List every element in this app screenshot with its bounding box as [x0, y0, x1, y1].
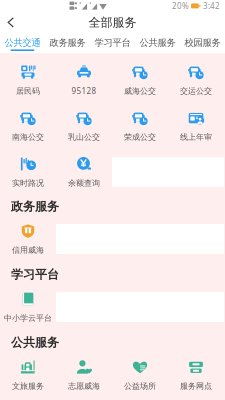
- button[interactable]: 政务服务: [45, 33, 90, 53]
- staticText: 志愿威海: [68, 381, 100, 391]
- staticText: 学习平台: [94, 37, 130, 48]
- button[interactable]: 服务网点: [168, 360, 224, 390]
- staticText: 荣成公交: [124, 132, 156, 142]
- button[interactable]: 线上年审: [168, 111, 224, 141]
- staticText: 中小学云平台: [4, 313, 52, 323]
- button[interactable]: 公益场所: [112, 360, 168, 390]
- staticText: 实时路况: [12, 178, 44, 188]
- button[interactable]: 公共服务: [135, 33, 180, 53]
- staticText: 线上年审: [180, 132, 212, 142]
- staticText: 95128: [71, 86, 96, 96]
- staticText: 校园服务: [184, 37, 220, 48]
- button[interactable]: 南海公交: [0, 111, 56, 141]
- staticText: 服务网点: [180, 381, 212, 391]
- staticText: 信用威海: [12, 245, 44, 255]
- staticText: 文旅服务: [12, 381, 44, 391]
- staticText: 公益场所: [124, 381, 156, 391]
- staticText: 乳山公交: [68, 132, 100, 142]
- button[interactable]: 乳山公交: [56, 111, 112, 141]
- button[interactable]: 威海公交: [112, 65, 168, 95]
- button[interactable]: 志愿威海: [56, 360, 112, 390]
- button[interactable]: 95128: [56, 65, 112, 95]
- staticText: 公共服务: [139, 37, 175, 48]
- staticText: 政务服务: [49, 37, 85, 48]
- staticText: 威海公交: [124, 86, 156, 96]
- staticText: 3:42: [203, 1, 220, 11]
- button[interactable]: 交运公交: [168, 65, 224, 95]
- button[interactable]: 实时路况: [0, 157, 56, 187]
- button[interactable]: 荣成公交: [112, 111, 168, 141]
- staticText: 公共服务: [11, 335, 59, 350]
- button[interactable]: 余额查询: [56, 157, 112, 187]
- staticText: 政务服务: [11, 199, 59, 214]
- button[interactable]: 中小学云平台: [0, 292, 56, 322]
- button[interactable]: Back: [0, 12, 22, 33]
- button[interactable]: 文旅服务: [0, 360, 56, 390]
- staticText: 余额查询: [68, 178, 100, 188]
- button[interactable]: 信用威海: [0, 224, 56, 254]
- button[interactable]: 公共交通: [0, 33, 45, 53]
- staticText: 居民码: [16, 86, 40, 96]
- button[interactable]: 居民码: [0, 65, 56, 95]
- staticText: 20%: [172, 1, 189, 11]
- staticText: 南海公交: [12, 132, 44, 142]
- button[interactable]: 校园服务: [180, 33, 225, 53]
- staticText: 公共交通: [4, 37, 40, 48]
- staticText: 全部服务: [88, 15, 136, 30]
- staticText: 交运公交: [180, 86, 212, 96]
- button[interactable]: 学习平台: [90, 33, 135, 53]
- staticText: 学习平台: [11, 267, 59, 282]
